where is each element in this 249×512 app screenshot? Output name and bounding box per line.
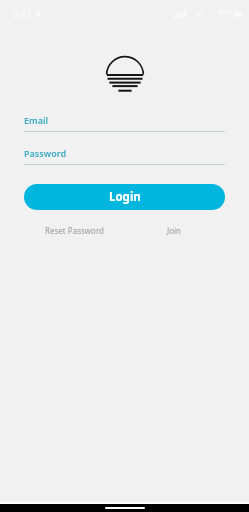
other: Home gesture handle [105,507,145,509]
staticText: Reset Password [45,225,104,236]
button[interactable]: Email [24,113,225,132]
button[interactable]: Login [24,184,225,210]
button[interactable]: Reset Password [24,223,124,237]
staticText: Join [167,225,182,236]
staticText: Login [109,189,141,205]
button[interactable]: Join [124,223,225,237]
staticText: Email [24,114,49,126]
staticText: Password [24,147,67,159]
other: App logo [106,56,144,93]
button[interactable]: Password [24,146,225,165]
